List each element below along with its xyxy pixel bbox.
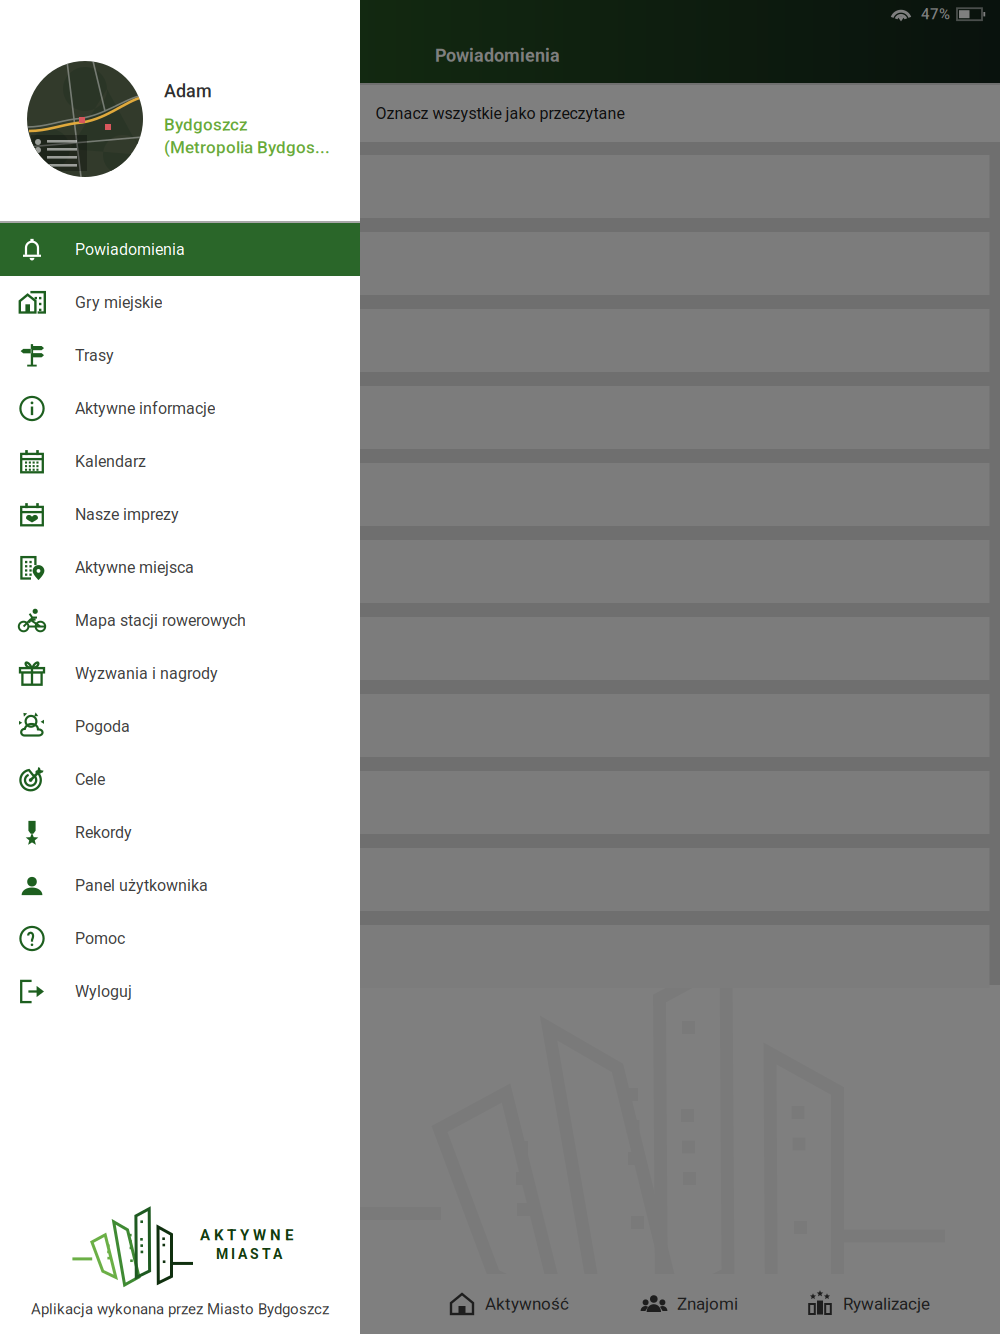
button[interactable] [10,386,989,449]
staticText: Powiadomienia [435,45,560,66]
staticText: Aktywność [485,1294,569,1314]
staticText: Oznacz wszystkie jako przeczytane [375,104,624,123]
button[interactable]: Wyloguj [0,965,360,1018]
staticText: Wyzwania i nagrody [75,664,218,683]
staticText: Bydgoszcz [164,115,248,134]
button[interactable]: Cele [0,753,360,806]
button[interactable] [10,540,989,603]
button[interactable]: Pogoda [0,700,360,753]
button[interactable]: Aktywne miejsca [0,541,360,594]
staticText: Mapa stacji rowerowych [75,611,246,630]
staticText: Wiadomości [222,1294,317,1314]
button[interactable]: Aktywność [448,1274,569,1334]
button[interactable]: Rywalizacje [806,1274,930,1334]
button[interactable]: Gry miejskie [0,276,360,329]
staticText: M I A S T A [216,1246,282,1262]
staticText: Pomoc [75,929,125,948]
staticText: Panel użytkownika [75,876,208,895]
staticText: Znajomi [677,1294,738,1314]
button[interactable]: Wiadomości [222,1274,317,1334]
staticText: Nasze imprezy [75,505,179,524]
staticText: Gry miejskie [75,293,162,312]
button[interactable]: Wyzwania i nagrody [0,647,360,700]
button[interactable] [10,771,989,834]
staticText: (Metropolia Bydgos... [164,137,330,157]
button[interactable] [10,463,989,526]
button[interactable] [10,694,989,757]
button[interactable]: Nasze imprezy [0,488,360,541]
button[interactable]: Kalendarz [0,435,360,488]
button[interactable] [10,848,989,911]
staticText: Cele [75,770,105,789]
staticText: A K T Y W N E [200,1226,293,1244]
button[interactable]: Panel użytkownika [0,859,360,912]
staticText: Kalendarz [75,452,146,471]
button[interactable]: Aktywne informacje [0,382,360,435]
button[interactable] [10,155,989,218]
button[interactable]: Pomoc [0,912,360,965]
button[interactable]: Powiadomienia [0,223,360,276]
staticText: Powiadomienia [75,240,185,259]
staticText: Aplikacja wykonana przez Miasto Bydgoszc… [31,1300,329,1318]
staticText: Aktywne informacje [75,399,215,418]
staticText: Pogoda [75,717,130,736]
button[interactable] [10,232,989,295]
button[interactable]: Znajomi [640,1274,738,1334]
button[interactable]: Mapa stacji rowerowych [0,594,360,647]
button[interactable] [10,309,989,372]
staticText: Aktywne miejsca [75,558,194,577]
button[interactable]: Rekordy [0,806,360,859]
staticText: Wyloguj [75,982,132,1001]
staticText: Trasy [75,346,114,365]
button[interactable]: Oznacz wszystkie jako przeczytane [0,85,1000,142]
staticText: Rywalizacje [843,1294,930,1314]
button[interactable] [10,617,989,680]
staticText: 47% [921,5,950,23]
button[interactable]: Trasy [0,329,360,382]
button[interactable] [10,925,989,988]
staticText: Rekordy [75,823,132,842]
staticText: Adam [164,80,212,102]
